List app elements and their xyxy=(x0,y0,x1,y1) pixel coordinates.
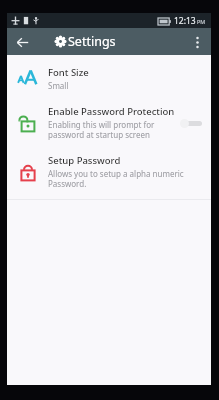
staticText: Settings xyxy=(68,33,116,50)
staticText: Setup Password xyxy=(48,154,121,167)
staticText: Font Size xyxy=(48,66,89,79)
staticText: 12:13 xyxy=(174,15,196,27)
button[interactable]: Enable Password Protection xyxy=(7,98,211,147)
button[interactable]: Font Size xyxy=(7,58,211,98)
staticText: Small xyxy=(48,80,69,91)
button[interactable]: More options xyxy=(186,31,208,53)
staticText: Allows you to setup a alpha numeric Pass… xyxy=(48,168,184,189)
button[interactable]: Back xyxy=(11,31,33,53)
button[interactable]: Enable password protection toggle xyxy=(179,115,205,131)
staticText: Enable Password Protection xyxy=(48,105,175,118)
staticText: PM xyxy=(197,18,206,25)
staticText: Enabling this will prompt for password a… xyxy=(48,119,155,140)
button[interactable]: Setup Password xyxy=(7,147,211,196)
